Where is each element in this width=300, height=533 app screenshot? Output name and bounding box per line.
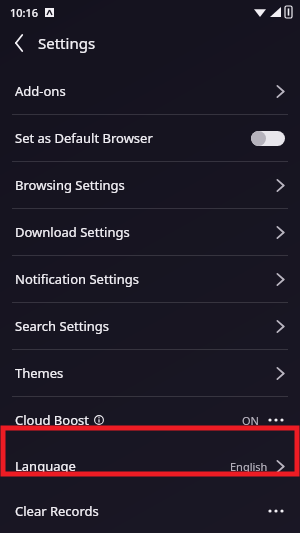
staticText: Notification Settings (15, 270, 139, 288)
button[interactable]: Set as Default Browser (0, 115, 300, 161)
staticText: 10:16 (10, 5, 39, 20)
staticText: Themes (15, 364, 64, 382)
button[interactable]: Add-ons (0, 68, 300, 114)
staticText: Cloud Boost (15, 411, 89, 429)
staticText: Download Settings (15, 223, 130, 241)
staticText: Search Settings (15, 317, 109, 335)
button[interactable]: Language (0, 443, 300, 489)
staticText: Browsing Settings (15, 176, 125, 194)
button[interactable]: Cloud Boost (0, 397, 300, 443)
staticText: ON (242, 413, 259, 428)
staticText: Add-ons (15, 82, 66, 100)
staticText: Set as Default Browser (15, 129, 153, 147)
button[interactable]: Clear Records (0, 489, 300, 533)
staticText: Clear Records (15, 502, 99, 520)
button[interactable]: Themes (0, 350, 300, 396)
button[interactable]: Back (0, 24, 38, 62)
button[interactable]: Download Settings (0, 209, 300, 255)
button[interactable]: Search Settings (0, 303, 300, 349)
button[interactable]: Browsing Settings (0, 162, 300, 208)
button[interactable]: Notification Settings (0, 256, 300, 302)
button[interactable]: Set as Default Browser toggle (251, 131, 285, 146)
staticText: Settings (38, 33, 96, 53)
staticText: Language (15, 457, 76, 475)
staticText: English (230, 459, 268, 474)
